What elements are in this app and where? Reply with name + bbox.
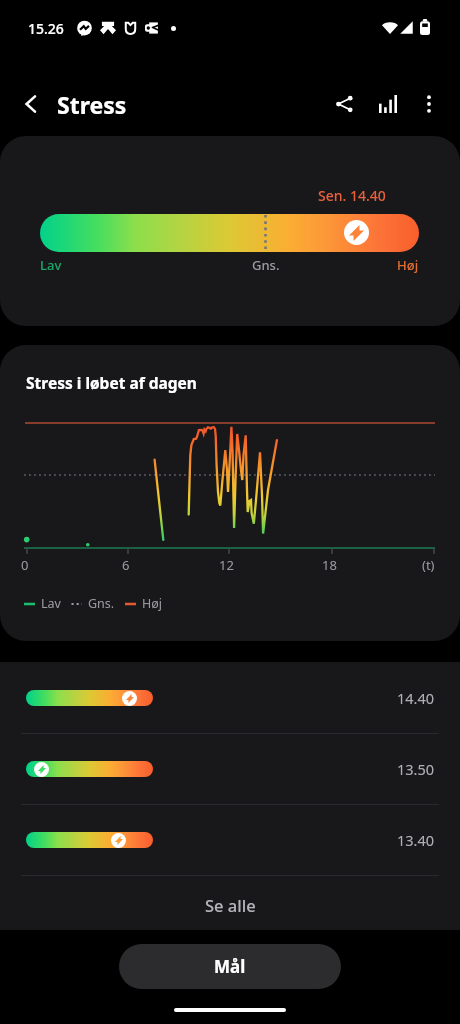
button[interactable]: Share [321, 81, 367, 127]
staticText: Høj [397, 256, 419, 274]
button[interactable]: Sen. 14.40 [0, 136, 460, 326]
staticText: 0 [21, 556, 29, 574]
staticText: 18 [322, 556, 337, 574]
staticText: (t) [422, 556, 435, 574]
button[interactable]: More options [406, 81, 452, 127]
staticText: 14.40 [397, 688, 435, 708]
staticText: Sen. 14.40 [318, 186, 386, 205]
button[interactable]: Mål [119, 944, 341, 989]
button[interactable]: Back [8, 81, 54, 127]
button[interactable]: Stress i løbet af dagen [0, 345, 460, 641]
staticText: Høj [142, 595, 163, 612]
staticText: 6 [122, 556, 130, 574]
button[interactable]: Statistics [365, 81, 411, 127]
staticText: Gns. [252, 256, 280, 274]
staticText: 12 [219, 556, 234, 574]
staticText: Stress i løbet af dagen [26, 372, 197, 393]
staticText: 13.50 [397, 759, 435, 779]
staticText: Se alle [205, 894, 256, 916]
staticText: Lav [40, 256, 62, 274]
button[interactable]: Se alle [0, 878, 460, 932]
staticText: Lav [41, 595, 61, 612]
button[interactable]: 13.40 [0, 822, 460, 858]
staticText: 15.26 [28, 19, 64, 38]
staticText: Stress [57, 89, 127, 120]
button[interactable]: 14.40 [0, 680, 460, 716]
staticText: 13.40 [397, 830, 435, 850]
staticText: Mål [214, 955, 246, 978]
button[interactable]: 13.50 [0, 751, 460, 787]
staticText: Gns. [88, 595, 115, 612]
